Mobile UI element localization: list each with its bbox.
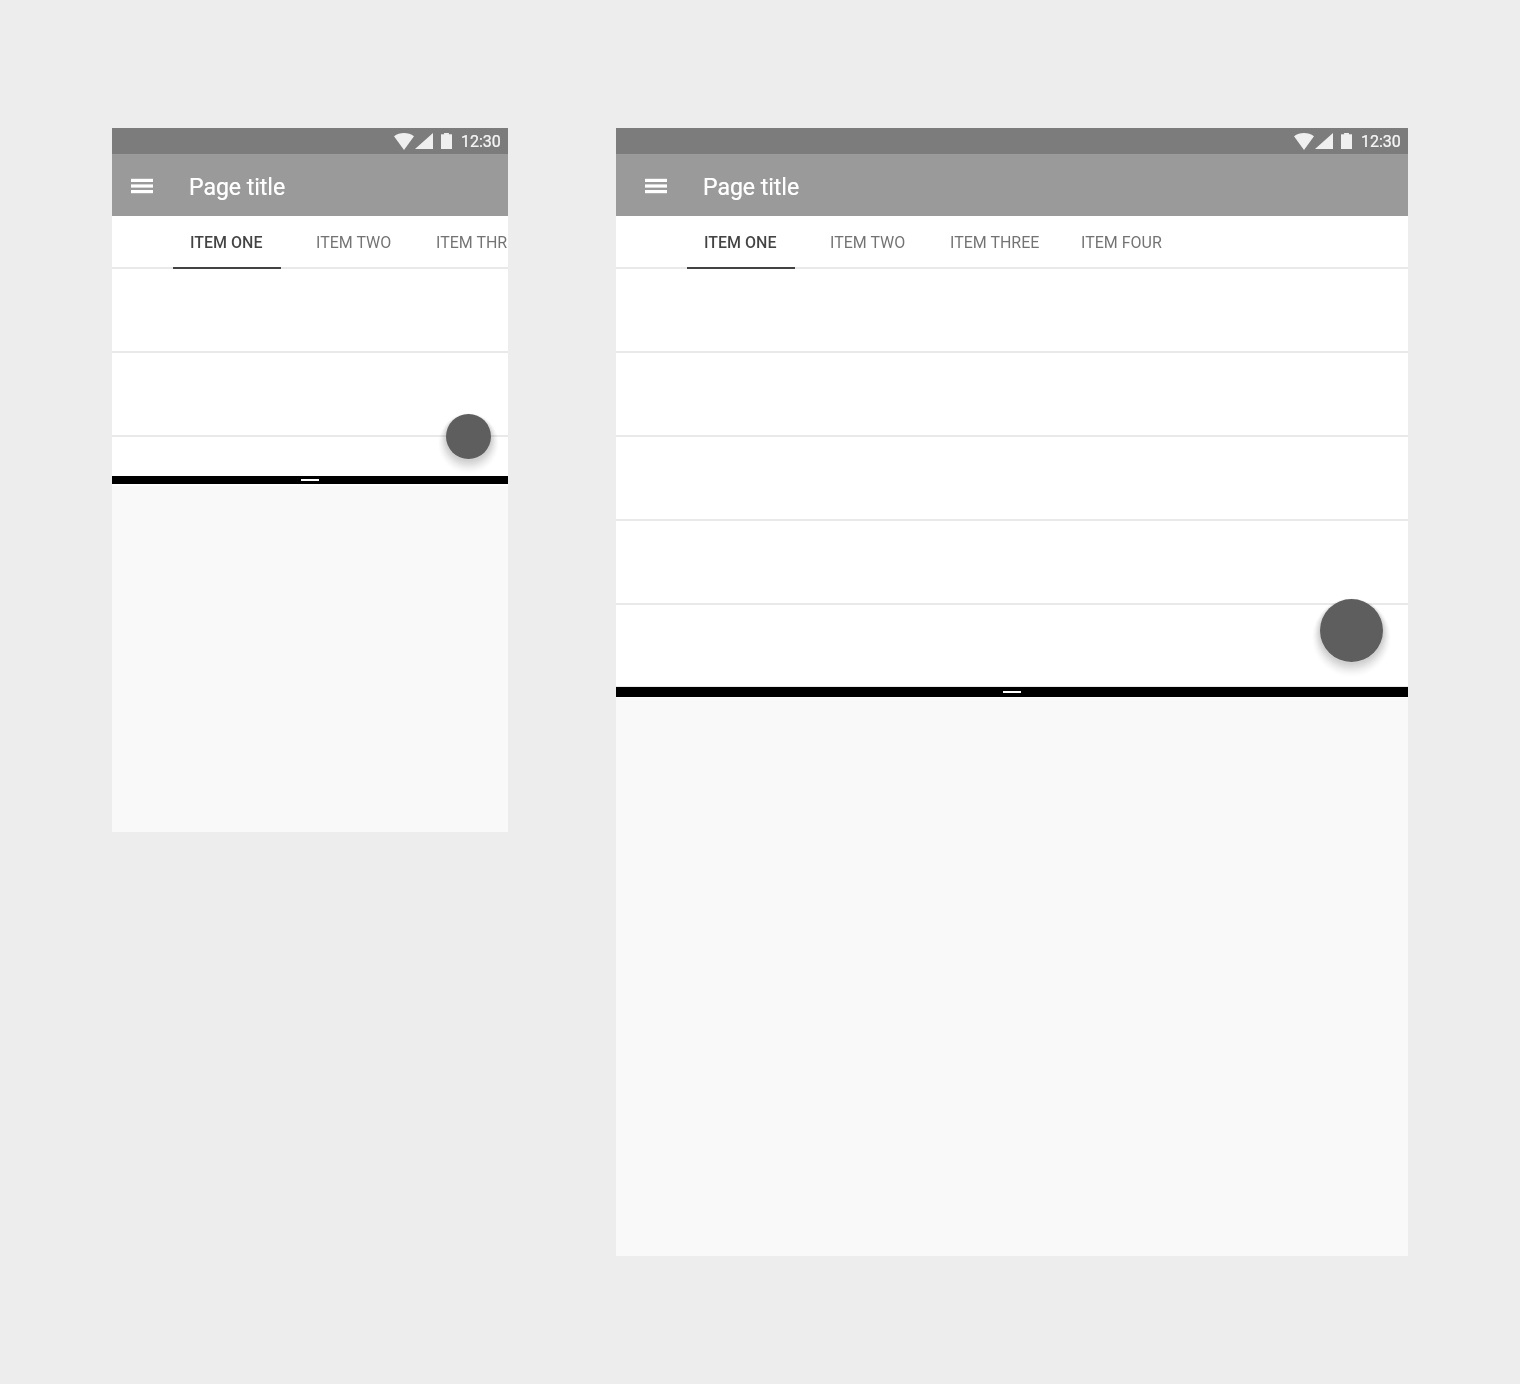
- button[interactable]: [112, 269, 508, 353]
- button[interactable]: ITEM TWO: [804, 216, 931, 269]
- staticText: Page title: [703, 174, 800, 201]
- staticText: ITEM THREE: [950, 233, 1040, 252]
- button[interactable]: [616, 353, 1408, 437]
- button[interactable]: [112, 353, 508, 437]
- button[interactable]: ITEM THREE: [931, 216, 1058, 269]
- staticText: ITEM THREE: [436, 233, 508, 252]
- staticText: ITEM ONE: [190, 233, 263, 252]
- button[interactable]: Create: [446, 414, 491, 459]
- button[interactable]: Open navigation menu: [131, 176, 153, 196]
- button[interactable]: ITEM FOUR: [1058, 216, 1185, 269]
- staticText: ITEM TWO: [316, 233, 392, 252]
- staticText: ITEM TWO: [830, 233, 906, 252]
- button[interactable]: Open navigation menu: [645, 176, 667, 196]
- button[interactable]: [112, 415, 508, 476]
- button[interactable]: ITEM ONE: [677, 216, 804, 269]
- staticText: ITEM FOUR: [1081, 233, 1162, 252]
- button[interactable]: [616, 521, 1408, 605]
- button[interactable]: [616, 269, 1408, 353]
- button[interactable]: [616, 437, 1408, 521]
- button[interactable]: ITEM TWO: [290, 216, 417, 269]
- button[interactable]: ITEM ONE: [163, 216, 290, 269]
- button[interactable]: Create: [1320, 599, 1383, 662]
- button[interactable]: [616, 604, 1408, 687]
- button[interactable]: ITEM THREE: [417, 216, 508, 269]
- staticText: Page title: [189, 174, 286, 201]
- staticText: 12:30: [1361, 132, 1401, 151]
- staticText: ITEM ONE: [704, 233, 777, 252]
- staticText: 12:30: [461, 132, 501, 151]
